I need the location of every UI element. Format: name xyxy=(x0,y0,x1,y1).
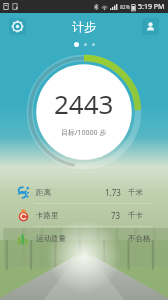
staticText: 计步 xyxy=(72,19,96,34)
staticText: 千卡 xyxy=(128,211,143,220)
staticText: 卡路里 xyxy=(36,211,59,220)
staticText: 千米 xyxy=(128,188,143,197)
staticText: 目标/10000 步 xyxy=(61,128,107,138)
staticText: 运动质量 xyxy=(36,234,66,243)
button[interactable]: 卡路里 xyxy=(16,204,152,226)
staticText: 1.73 xyxy=(105,187,121,198)
button[interactable]: Profile xyxy=(142,18,159,35)
button[interactable]: 运动质量 xyxy=(16,227,152,249)
staticText: 82% xyxy=(120,4,130,11)
button[interactable]: 距离 xyxy=(16,181,152,203)
staticText: 73 xyxy=(111,210,121,221)
button[interactable]: Step progress xyxy=(25,53,143,171)
staticText: 距离 xyxy=(36,188,51,197)
staticText: 2443 xyxy=(54,86,114,121)
staticText: 5:19 PM xyxy=(138,2,165,12)
button[interactable]: Settings xyxy=(9,18,26,35)
staticText: 不合格 xyxy=(128,234,151,243)
